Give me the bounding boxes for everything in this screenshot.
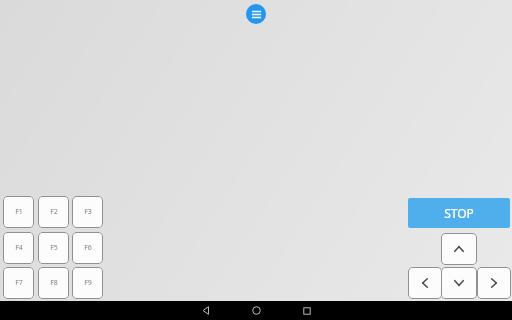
button[interactable]: Recents (287, 301, 327, 320)
button[interactable]: F2 (38, 196, 69, 228)
button[interactable]: F1 (3, 196, 34, 228)
button[interactable]: F3 (72, 196, 103, 228)
staticText: STOP (444, 205, 474, 221)
button[interactable]: F8 (38, 267, 69, 299)
button[interactable]: F9 (72, 267, 103, 299)
button[interactable]: F6 (72, 232, 103, 264)
button[interactable]: Back (186, 301, 226, 320)
button[interactable]: Down (441, 267, 477, 299)
staticText: F8 (50, 278, 58, 288)
button[interactable]: F4 (3, 232, 34, 264)
staticText: F3 (84, 207, 92, 217)
button[interactable]: F7 (3, 267, 34, 299)
staticText: F7 (15, 278, 23, 288)
button[interactable]: Home (236, 301, 276, 320)
button[interactable]: Left (408, 267, 442, 299)
staticText: F9 (84, 278, 92, 288)
staticText: F2 (50, 207, 58, 217)
button[interactable]: Right (477, 267, 511, 299)
staticText: F4 (15, 243, 23, 253)
staticText: F5 (50, 243, 58, 253)
button[interactable]: Menu (246, 4, 266, 24)
staticText: F1 (15, 207, 23, 217)
button[interactable]: STOP (408, 198, 510, 228)
button[interactable]: F5 (38, 232, 69, 264)
button[interactable]: Up (441, 233, 477, 265)
staticText: F6 (84, 243, 92, 253)
